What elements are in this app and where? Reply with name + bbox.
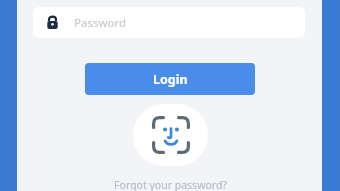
staticText: Password	[74, 15, 127, 31]
button[interactable]: Login	[85, 63, 255, 95]
staticText: Forgot your password?	[114, 178, 227, 191]
other: Password lock	[46, 16, 59, 29]
button[interactable]: Face ID login	[133, 104, 208, 166]
button[interactable]: Password lock	[33, 7, 305, 38]
button[interactable]: Forgot your password?	[0, 178, 340, 191]
staticText: Login	[153, 71, 188, 88]
